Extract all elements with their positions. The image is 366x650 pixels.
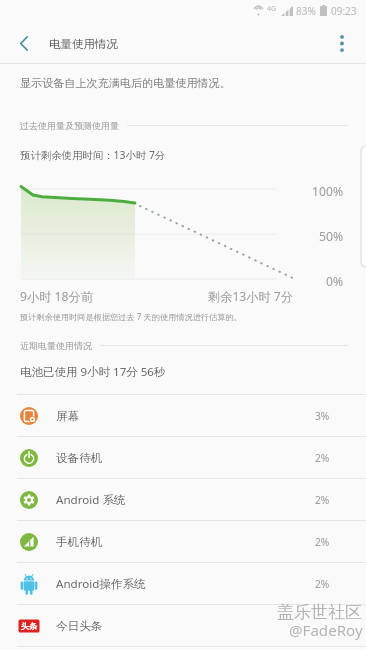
staticText: 显示设备自上次充满电后的电量使用情况。 <box>20 76 231 90</box>
staticText: 剩余13小时 7分 <box>208 288 294 305</box>
staticText: 预计剩余使用时间：13小时 7分 <box>20 148 166 162</box>
staticText: 2% <box>315 493 330 507</box>
staticText: 09:23 <box>331 4 357 18</box>
staticText: 3% <box>315 409 330 423</box>
button[interactable]: 头条 <box>0 605 366 647</box>
staticText: 预计剩余使用时间是根据您过去 7 天的使用情况进行估算的。 <box>20 311 242 322</box>
staticText: 设备待机 <box>56 451 103 466</box>
button[interactable]: 设备待机 <box>0 437 366 479</box>
staticText: 4G <box>267 4 277 14</box>
staticText: 100% <box>312 183 344 200</box>
staticText: 头条 <box>21 621 37 631</box>
staticText: 2% <box>315 535 330 549</box>
staticText: 电池已使用 9小时 17分 56秒 <box>20 364 166 380</box>
staticText: @FadeRoy <box>289 620 363 641</box>
button[interactable]: 屏幕 <box>0 395 366 437</box>
staticText: 电量使用情况 <box>49 37 118 51</box>
staticText: 0% <box>326 273 344 290</box>
button[interactable]: More options <box>322 24 362 63</box>
staticText: 50% <box>319 228 344 245</box>
staticText: 2% <box>315 451 330 465</box>
staticText: 83% <box>296 4 316 18</box>
staticText: 今日头条 <box>56 619 103 634</box>
button[interactable]: Back <box>4 24 44 63</box>
staticText: 屏幕 <box>56 409 80 424</box>
button[interactable]: Android操作系统 <box>0 563 366 605</box>
staticText: 2% <box>315 577 330 591</box>
staticText: 盖乐世社区 <box>277 602 362 623</box>
staticText: 近期电量使用情况 <box>20 340 92 351</box>
staticText: 手机待机 <box>56 535 103 550</box>
button[interactable]: Android 系统 <box>0 479 366 521</box>
staticText: Android操作系统 <box>56 576 146 592</box>
button[interactable]: 手机待机 <box>0 521 366 563</box>
staticText: 9小时 18分前 <box>20 288 93 305</box>
staticText: Android 系统 <box>56 492 126 508</box>
staticText: 过去使用量及预测使用量 <box>20 120 119 131</box>
